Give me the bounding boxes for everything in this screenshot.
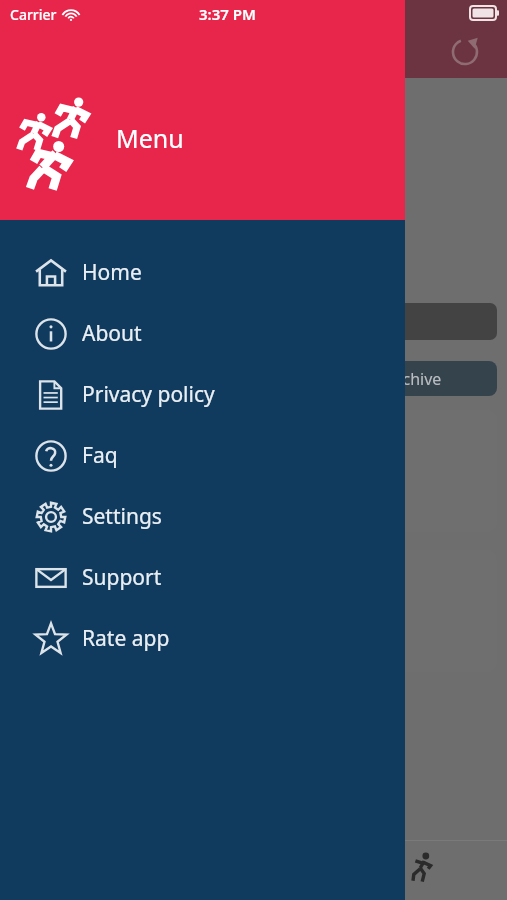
staticText: Menu: [116, 121, 184, 155]
button[interactable]: About: [0, 303, 405, 364]
staticText: Archive: [386, 368, 442, 390]
button[interactable]: Support: [0, 547, 405, 608]
staticText: Support: [82, 563, 162, 592]
button[interactable]: [320, 550, 497, 672]
staticText: Privacy policy: [82, 380, 215, 409]
staticText: 3:37 PM: [199, 4, 256, 24]
staticText: Home: [82, 258, 142, 287]
button[interactable]: [320, 303, 497, 340]
button[interactable]: Settings: [0, 486, 405, 547]
button[interactable]: Archive: [330, 361, 497, 396]
staticText: Carrier: [10, 5, 57, 24]
staticText: Rate app: [82, 624, 170, 653]
button[interactable]: [320, 410, 497, 532]
button[interactable]: Rate app: [0, 608, 405, 669]
button[interactable]: Faq: [0, 425, 405, 486]
button[interactable]: Refresh: [443, 30, 487, 74]
staticText: About: [82, 319, 142, 348]
staticText: Faq: [82, 441, 118, 470]
button[interactable]: Home: [0, 242, 405, 303]
button[interactable]: Activity: [405, 848, 445, 888]
button[interactable]: Privacy policy: [0, 364, 405, 425]
staticText: Settings: [82, 502, 162, 531]
